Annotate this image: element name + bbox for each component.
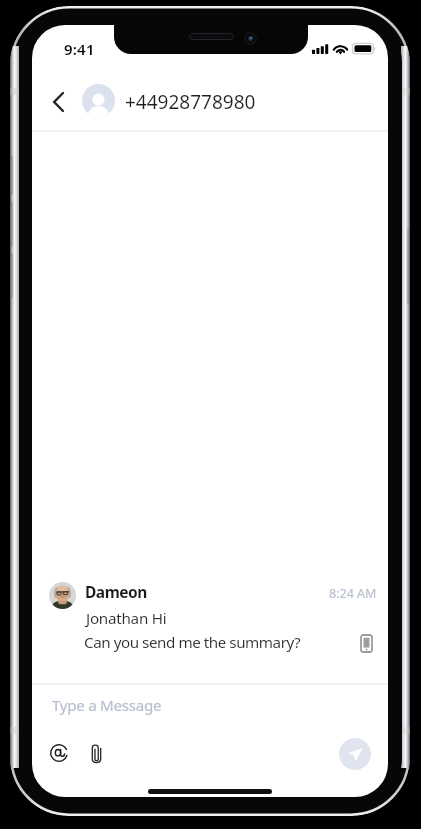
- staticText: +44928778980: [125, 89, 256, 115]
- staticText: 9:41: [64, 39, 95, 59]
- staticText: 8:24 AM: [329, 585, 377, 602]
- staticText: Jonathan Hi: [86, 608, 167, 629]
- staticText: Type a Message: [52, 695, 162, 716]
- button[interactable]: Mobile device: [361, 635, 372, 652]
- button[interactable]: Dameon avatar: [49, 582, 76, 609]
- staticText: Can you send me the summary?: [84, 632, 301, 653]
- button[interactable]: Back: [40, 83, 77, 120]
- button[interactable]: +44928778980: [122, 83, 302, 120]
- button[interactable]: Attach file: [91, 744, 102, 764]
- button[interactable]: Contact avatar: [82, 84, 115, 117]
- button[interactable]: Send message: [339, 738, 371, 770]
- button[interactable]: Mention: [48, 742, 70, 764]
- button[interactable]: Type a Message: [32, 685, 388, 730]
- staticText: Dameon: [85, 581, 147, 602]
